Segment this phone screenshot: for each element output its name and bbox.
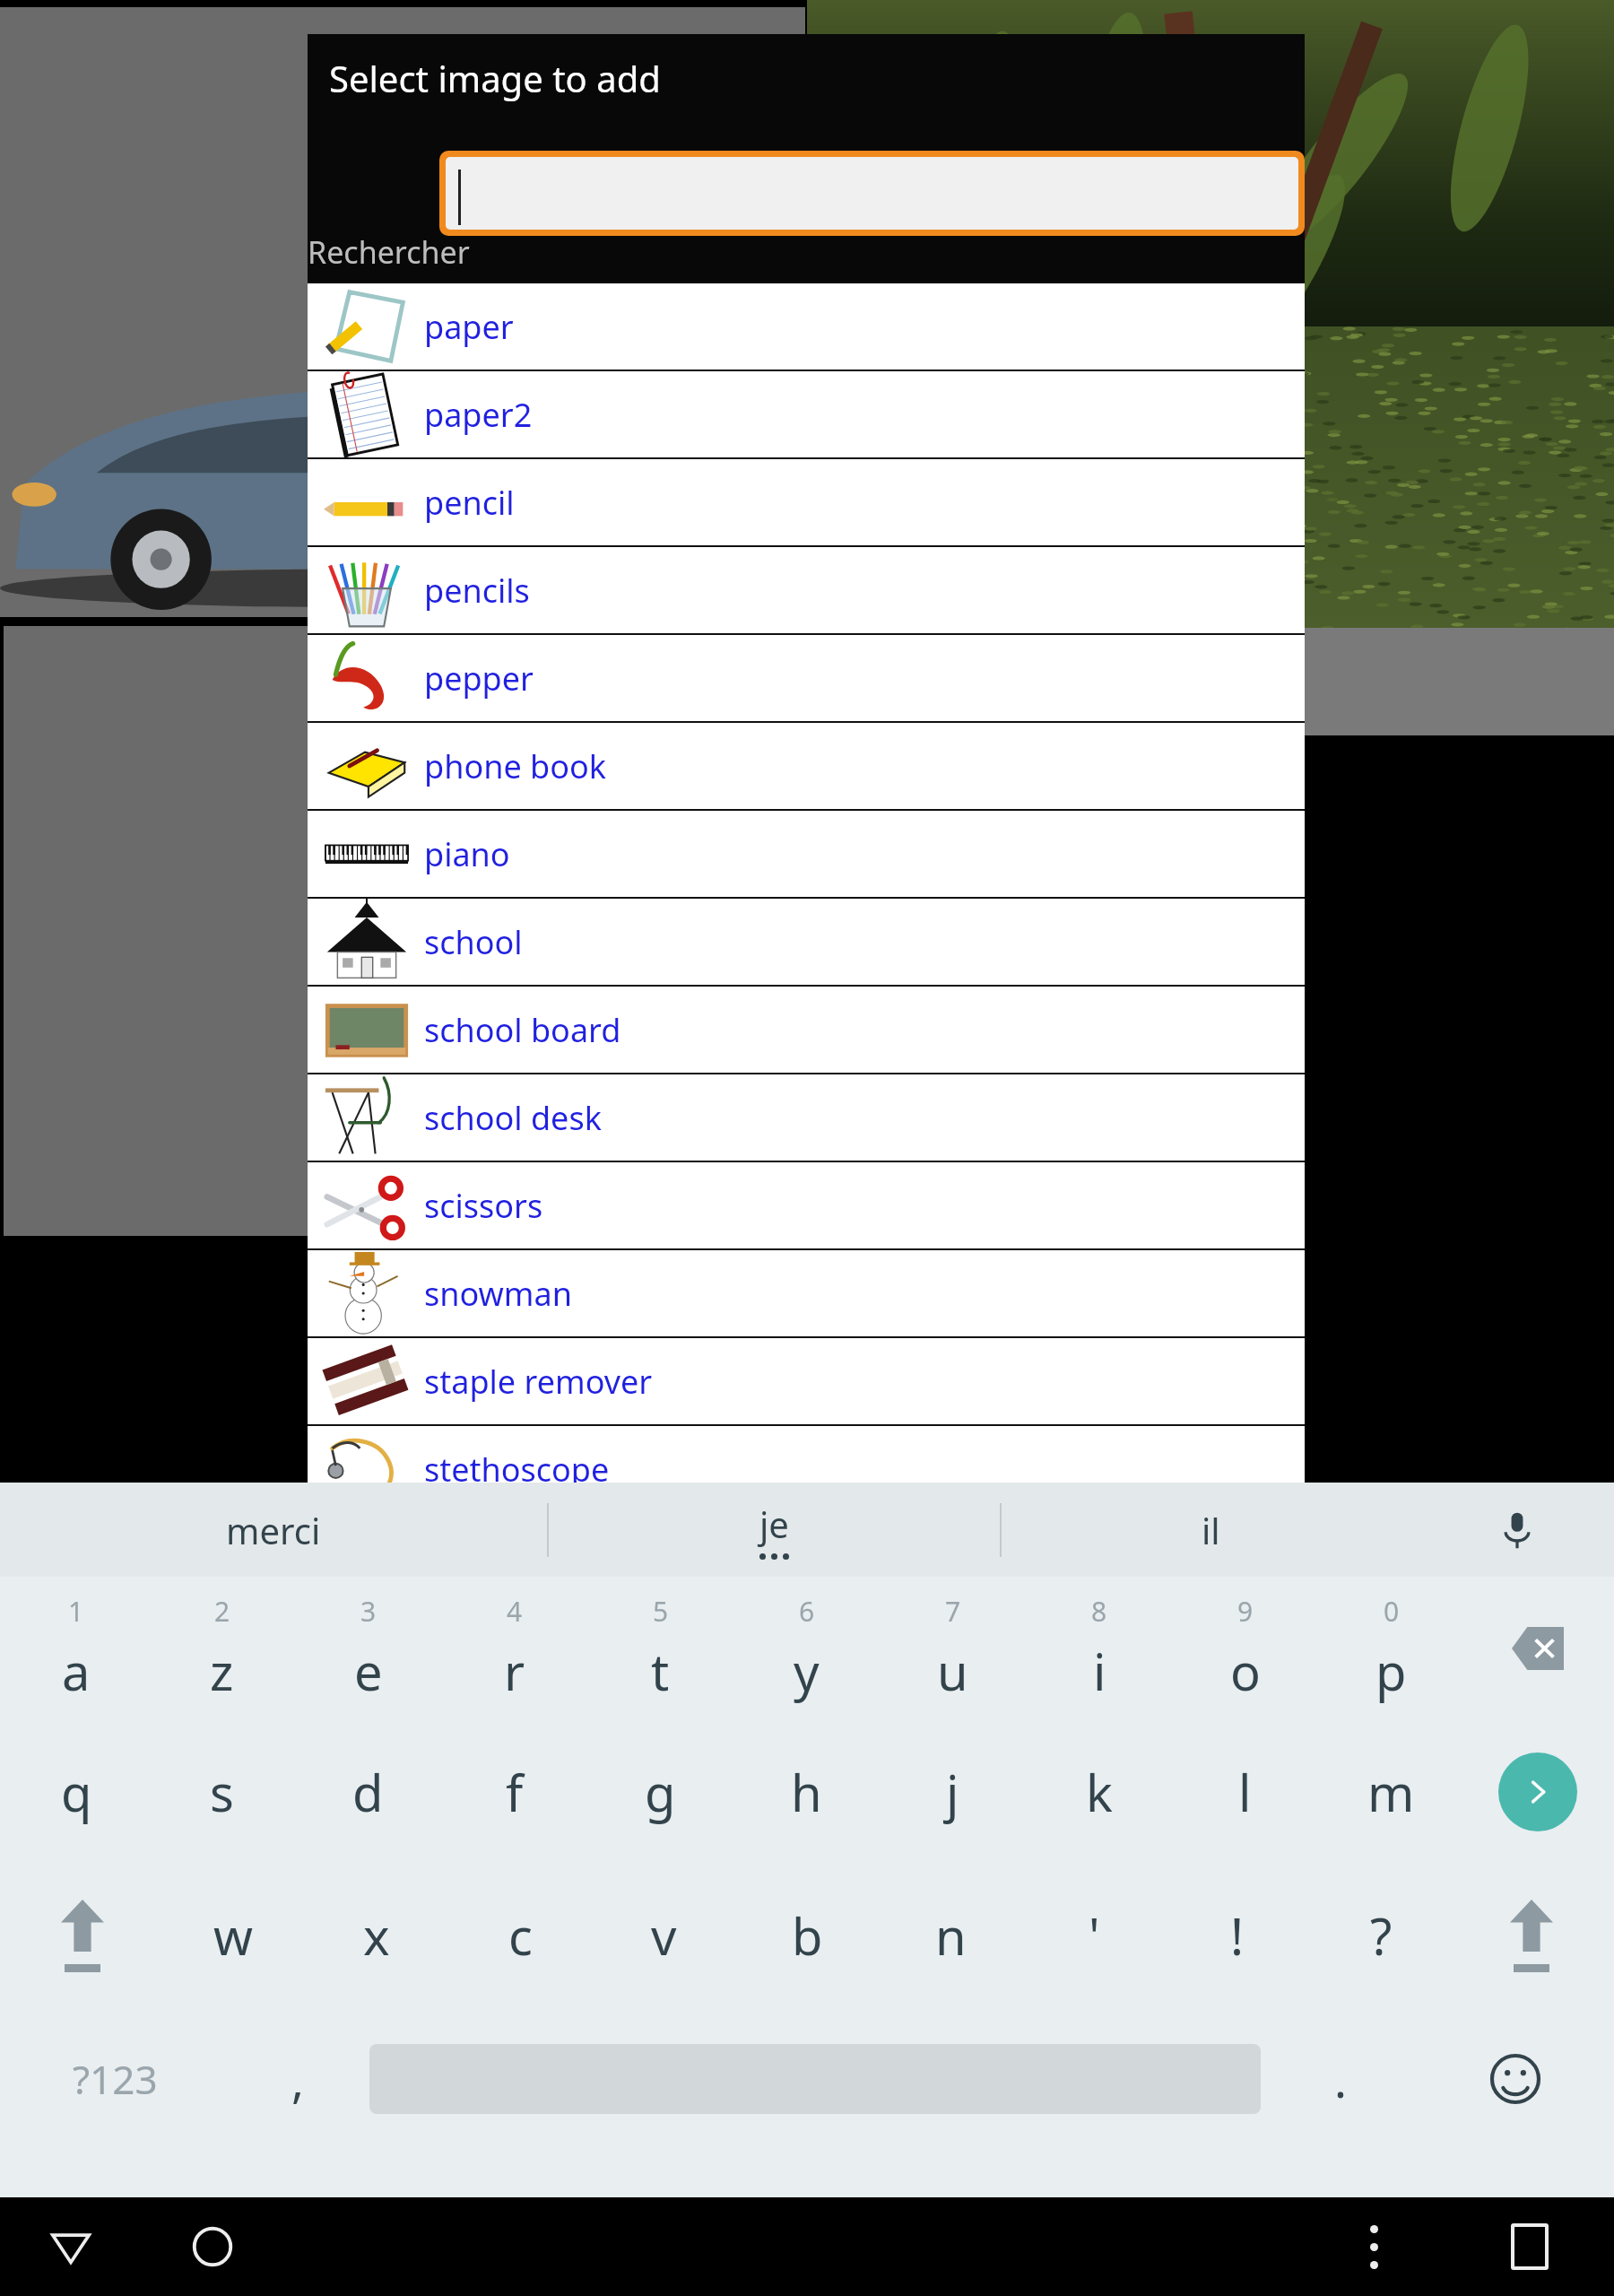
button[interactable]: g bbox=[587, 1720, 733, 1864]
button[interactable]: je bbox=[549, 1483, 1000, 1577]
button[interactable]: 9 bbox=[1172, 1577, 1318, 1720]
button[interactable]: ' bbox=[1022, 1864, 1166, 2007]
button[interactable]: Emoji bbox=[1419, 2007, 1610, 2151]
button[interactable]: 2 bbox=[149, 1577, 295, 1720]
staticText: q bbox=[61, 1758, 92, 1826]
button[interactable]: m bbox=[1318, 1720, 1464, 1864]
staticText: . bbox=[1334, 2048, 1347, 2111]
button[interactable]: Enter bbox=[1464, 1720, 1610, 1864]
button[interactable]: 1 bbox=[4, 1577, 149, 1720]
button[interactable]: k bbox=[1026, 1720, 1172, 1864]
button[interactable]: paper2 bbox=[308, 371, 1305, 459]
button[interactable]: 6 bbox=[733, 1577, 880, 1720]
staticText: c bbox=[508, 1901, 533, 1970]
button[interactable]: Space bbox=[369, 2007, 1261, 2151]
staticText: Select image to add bbox=[329, 54, 661, 102]
button[interactable]: pepper bbox=[308, 635, 1305, 723]
staticText: school bbox=[424, 920, 523, 964]
staticText: o bbox=[1230, 1637, 1261, 1705]
button[interactable]: c bbox=[448, 1864, 592, 2007]
button[interactable]: More options bbox=[1303, 2197, 1445, 2296]
button[interactable]: s bbox=[149, 1720, 295, 1864]
staticText: 4 bbox=[507, 1593, 523, 1630]
button[interactable]: scissors bbox=[308, 1162, 1305, 1250]
staticText: l bbox=[1238, 1758, 1252, 1826]
staticText: merci bbox=[226, 1506, 321, 1554]
button[interactable]: 4 bbox=[441, 1577, 587, 1720]
button[interactable]: ?123 bbox=[4, 2007, 226, 2151]
staticText: n bbox=[935, 1901, 967, 1970]
button[interactable]: d bbox=[295, 1720, 441, 1864]
staticText: t bbox=[651, 1637, 670, 1705]
button[interactable]: table bbox=[308, 1514, 1305, 1544]
button[interactable]: h bbox=[733, 1720, 880, 1864]
staticText: k bbox=[1086, 1758, 1113, 1826]
button[interactable]: l bbox=[1172, 1720, 1318, 1864]
button[interactable]: Shift bbox=[4, 1864, 161, 2007]
button[interactable]: Shift bbox=[1453, 1864, 1610, 2007]
staticText: 8 bbox=[1091, 1593, 1107, 1630]
button[interactable]: ! bbox=[1166, 1864, 1309, 2007]
button[interactable]: paper bbox=[308, 283, 1305, 371]
button[interactable]: f bbox=[441, 1720, 587, 1864]
staticText: stethoscope bbox=[424, 1448, 610, 1492]
button[interactable]: ? bbox=[1309, 1864, 1453, 2007]
staticText: u bbox=[937, 1637, 968, 1705]
staticText: piano bbox=[424, 832, 510, 876]
button[interactable]: 7 bbox=[880, 1577, 1026, 1720]
button[interactable]: 8 bbox=[1026, 1577, 1172, 1720]
staticText: 0 bbox=[1384, 1593, 1400, 1630]
button[interactable]: 5 bbox=[587, 1577, 733, 1720]
button[interactable]: staple remover bbox=[308, 1338, 1305, 1426]
button[interactable]: Back bbox=[0, 2197, 142, 2296]
staticText: h bbox=[791, 1758, 822, 1826]
staticText: 7 bbox=[945, 1593, 961, 1630]
button[interactable]: v bbox=[592, 1864, 735, 2007]
staticText: pepper bbox=[424, 657, 534, 700]
button[interactable]: q bbox=[4, 1720, 149, 1864]
staticText: a bbox=[62, 1637, 91, 1705]
button[interactable]: pencils bbox=[308, 547, 1305, 635]
button[interactable]: x bbox=[305, 1864, 448, 2007]
button[interactable]: il bbox=[1002, 1483, 1420, 1577]
staticText: ' bbox=[1089, 1901, 1100, 1970]
button[interactable]: , bbox=[226, 2007, 369, 2151]
button[interactable]: pencil bbox=[308, 459, 1305, 547]
staticText: 1 bbox=[68, 1593, 84, 1630]
button[interactable]: Backspace bbox=[1464, 1577, 1610, 1720]
staticText: school desk bbox=[424, 1096, 602, 1140]
staticText: phone book bbox=[424, 744, 607, 788]
staticText: r bbox=[504, 1637, 525, 1705]
staticText: staple remover bbox=[424, 1360, 653, 1404]
staticText: school board bbox=[424, 1008, 621, 1052]
button[interactable]: j bbox=[880, 1720, 1026, 1864]
staticText: j bbox=[946, 1758, 959, 1826]
button[interactable]: snowman bbox=[308, 1250, 1305, 1338]
button[interactable]: Voice input bbox=[1420, 1483, 1614, 1577]
staticText: y bbox=[794, 1637, 820, 1705]
button[interactable]: w bbox=[161, 1864, 305, 2007]
button[interactable]: piano bbox=[308, 811, 1305, 899]
button[interactable]: school bbox=[308, 899, 1305, 987]
staticText: 3 bbox=[360, 1593, 377, 1630]
button[interactable]: 3 bbox=[295, 1577, 441, 1720]
button[interactable]: Home bbox=[142, 2197, 283, 2296]
staticText: g bbox=[645, 1758, 676, 1826]
button[interactable]: merci bbox=[0, 1483, 547, 1577]
button[interactable]: phone book bbox=[308, 723, 1305, 811]
button[interactable]: . bbox=[1261, 2007, 1419, 2151]
button[interactable]: Recents bbox=[1445, 2197, 1614, 2296]
staticText: 6 bbox=[799, 1593, 815, 1630]
staticText: m bbox=[1367, 1758, 1415, 1826]
button[interactable]: b bbox=[735, 1864, 879, 2007]
button[interactable]: stethoscope bbox=[308, 1426, 1305, 1514]
button[interactable] bbox=[446, 157, 1298, 230]
staticText: 9 bbox=[1237, 1593, 1254, 1630]
button[interactable]: 0 bbox=[1318, 1577, 1464, 1720]
button[interactable]: school board bbox=[308, 987, 1305, 1074]
staticText: b bbox=[792, 1901, 823, 1970]
staticText: Rechercher bbox=[308, 231, 470, 273]
staticText: , bbox=[291, 2048, 304, 2111]
button[interactable]: n bbox=[879, 1864, 1022, 2007]
button[interactable]: school desk bbox=[308, 1074, 1305, 1162]
